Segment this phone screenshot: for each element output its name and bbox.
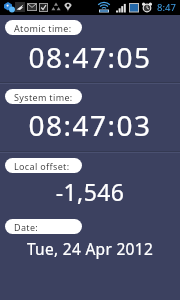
button[interactable]: System time: [5, 89, 82, 104]
staticText: Atomic time: [14, 22, 72, 34]
button[interactable]: Date: [5, 219, 82, 234]
staticText: 08:47:03 [0, 106, 180, 144]
staticText: Date: [14, 221, 39, 233]
staticText: Local offset: [14, 160, 70, 172]
staticText: 08:47:05 [0, 38, 180, 76]
staticText: 8:47 [157, 1, 176, 14]
staticText: -1,546 [0, 176, 180, 207]
button[interactable]: Atomic time: [5, 20, 82, 35]
staticText: System time: [14, 91, 73, 103]
staticText: Tue, 24 Apr 2012 [0, 238, 180, 259]
button[interactable]: Local offset: [5, 158, 82, 173]
